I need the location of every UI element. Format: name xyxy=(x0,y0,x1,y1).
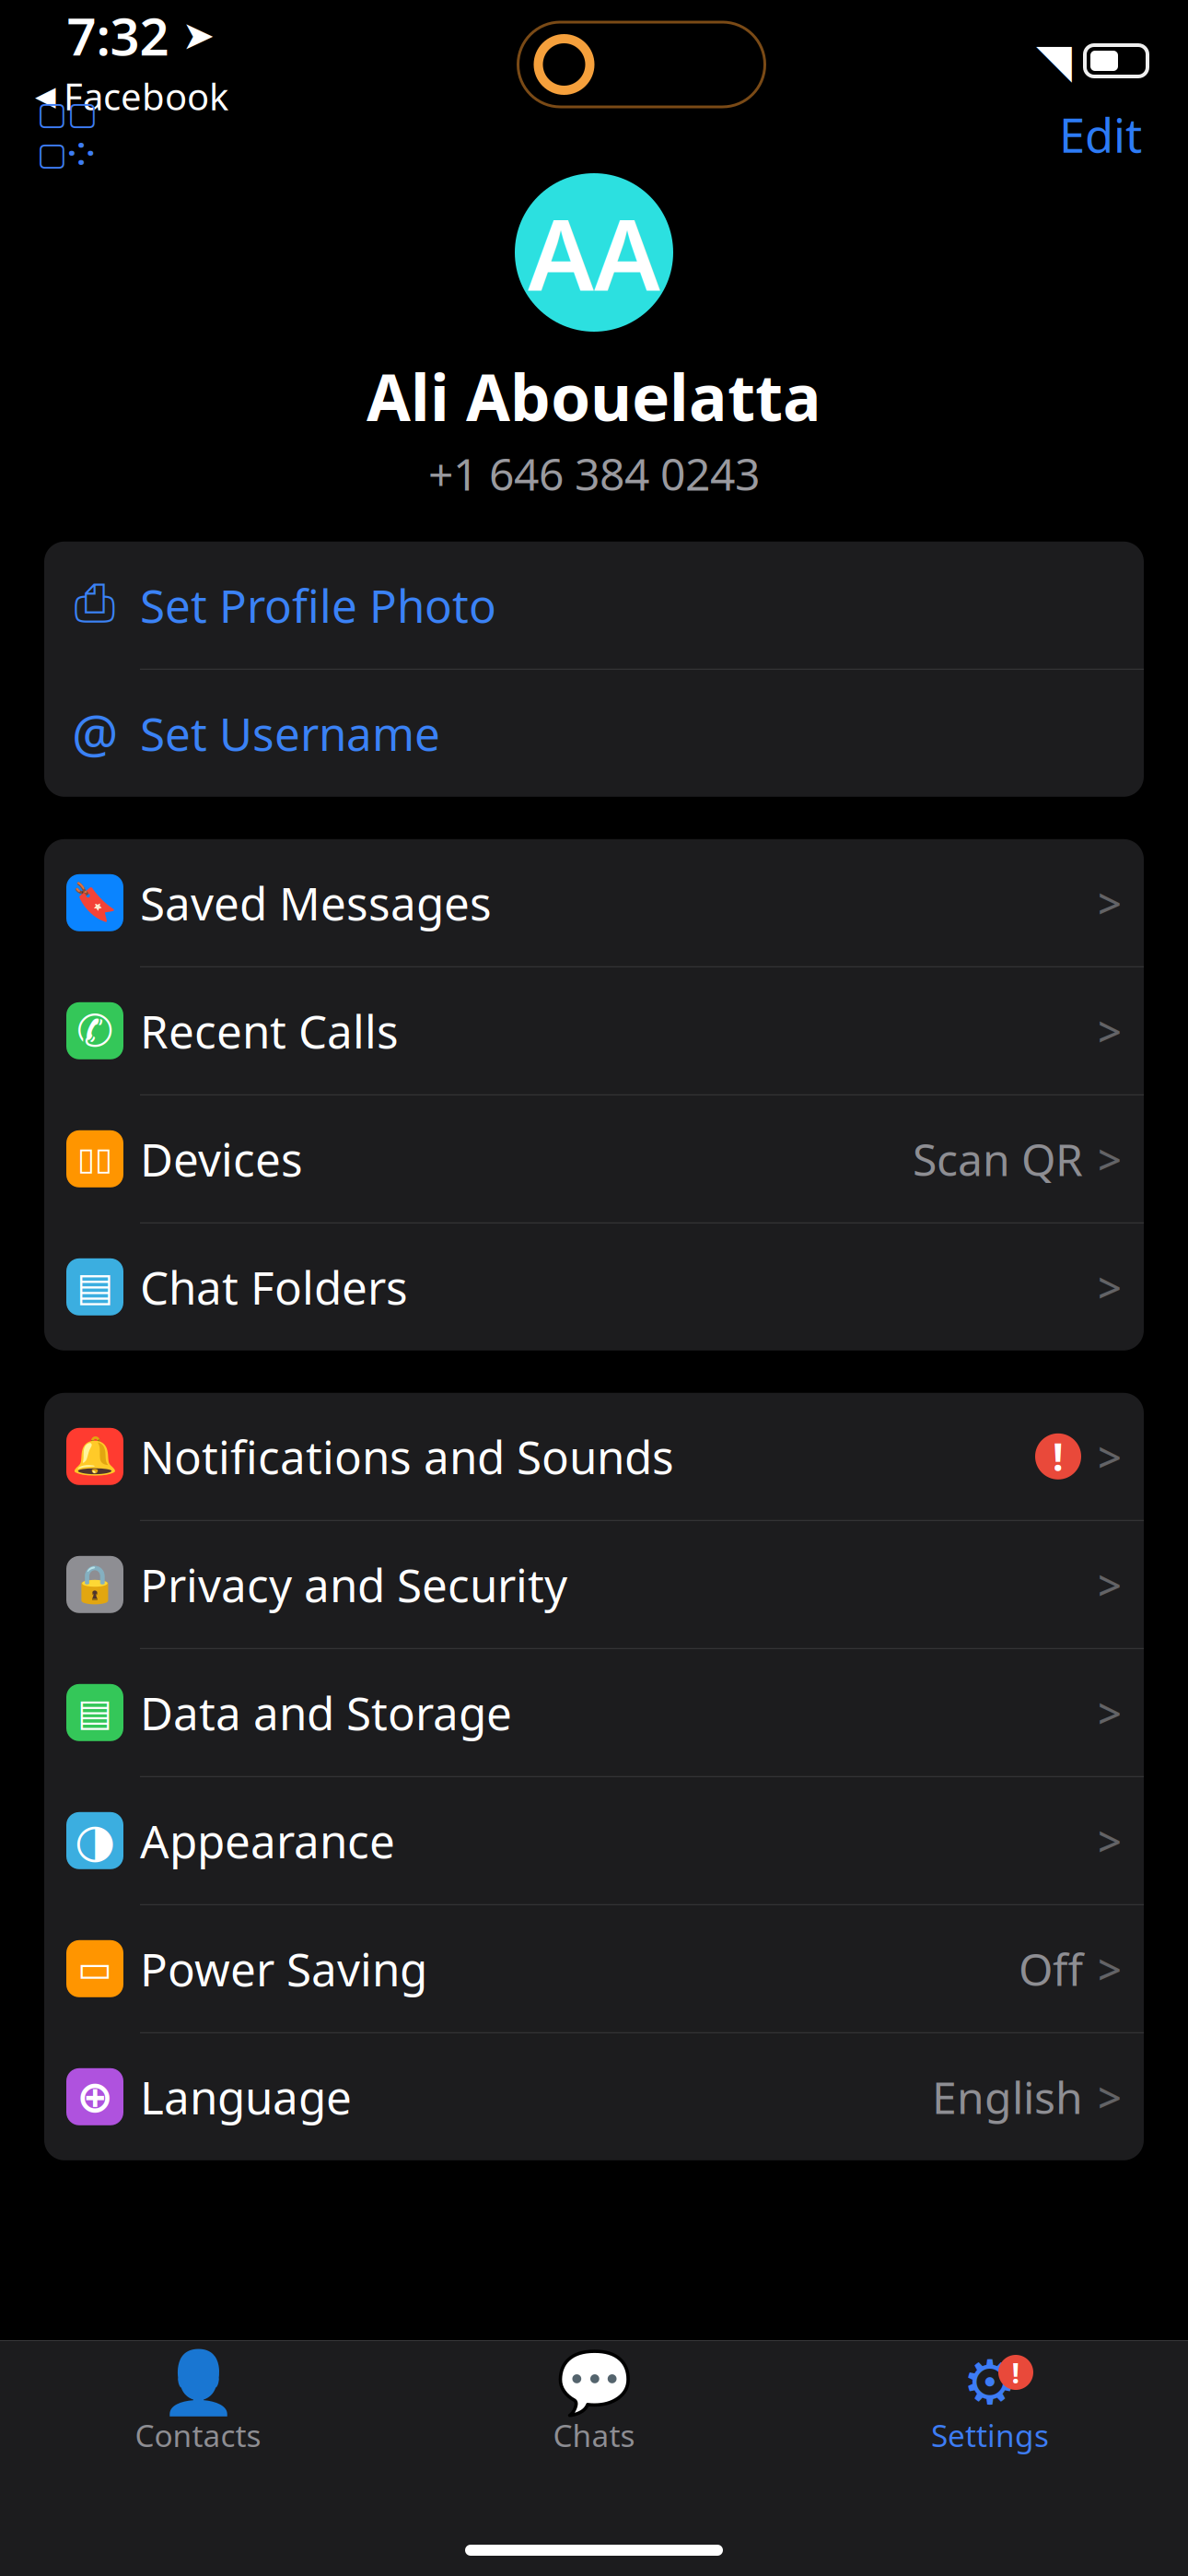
staticText: Privacy and Security xyxy=(140,1554,567,1615)
button[interactable]: ▤ xyxy=(44,1223,1144,1350)
staticText: 🔖 xyxy=(72,882,118,924)
staticText: Edit xyxy=(1059,104,1142,166)
button[interactable]: ⊕ xyxy=(44,2033,1144,2160)
staticText: Chats xyxy=(553,2415,635,2456)
staticText: > xyxy=(1098,1941,1122,1996)
staticText: 🔒 xyxy=(72,1563,118,1606)
button[interactable]: ◀ xyxy=(35,71,247,120)
staticText: Notifications and Sounds xyxy=(140,1426,674,1487)
staticText: 🔔 xyxy=(72,1435,118,1478)
staticText: ▭ xyxy=(77,1948,112,1990)
staticText: Language xyxy=(140,2067,352,2127)
staticText: ✆ xyxy=(76,1006,113,1056)
button[interactable]: ◑ xyxy=(44,1777,1144,1904)
button[interactable]: ▤ xyxy=(44,1649,1144,1776)
staticText: ▤ xyxy=(77,1692,112,1733)
button[interactable]: QR Code xyxy=(35,106,99,163)
button[interactable]: 👤 xyxy=(0,2356,396,2456)
button[interactable]: 💬 xyxy=(396,2356,792,2456)
staticText: ◑ xyxy=(75,1814,115,1867)
staticText: ▯▯ xyxy=(77,1141,112,1177)
staticText: Settings xyxy=(931,2415,1049,2456)
staticText: Ali Abouelatta xyxy=(367,354,821,439)
staticText: Devices xyxy=(140,1129,303,1189)
button[interactable]: ⚙ xyxy=(792,2356,1188,2456)
button[interactable]: 🔖 xyxy=(44,839,1144,966)
staticText: Appearance xyxy=(140,1810,395,1871)
staticText: > xyxy=(1098,1557,1122,1612)
staticText: ! xyxy=(1012,2354,1020,2391)
staticText: +1 646 384 0243 xyxy=(428,444,760,503)
staticText: ➤ xyxy=(182,13,215,58)
staticText: English xyxy=(932,2067,1083,2126)
staticText: 💬 xyxy=(556,2347,632,2418)
staticText: > xyxy=(1098,1003,1122,1059)
button[interactable]: Edit xyxy=(1048,96,1153,173)
staticText: Saved Messages xyxy=(140,873,492,933)
staticText: Recent Calls xyxy=(140,1001,399,1061)
staticText: Facebook xyxy=(64,71,228,120)
button[interactable]: ▯▯ xyxy=(44,1095,1144,1222)
staticText: Off xyxy=(1019,1939,1083,1998)
staticText: ◀ xyxy=(35,81,56,111)
staticText: ⎙ xyxy=(74,580,116,630)
button[interactable]: @ xyxy=(44,670,1144,797)
staticText: > xyxy=(1098,1131,1122,1187)
staticText: @ xyxy=(72,699,118,767)
staticText: 7:32 xyxy=(67,1,169,70)
staticText: ! xyxy=(1053,1431,1064,1482)
button[interactable]: 🔒 xyxy=(44,1521,1144,1648)
staticText: Scan QR xyxy=(913,1129,1083,1188)
staticText: Chat Folders xyxy=(140,1257,408,1317)
button[interactable]: ⎙ xyxy=(44,542,1144,669)
staticText: > xyxy=(1098,1813,1122,1868)
staticText: ▤ xyxy=(76,1265,113,1309)
staticText: Set Username xyxy=(140,703,440,763)
staticText: Power Saving xyxy=(140,1939,427,1999)
staticText: Set Profile Photo xyxy=(140,575,496,635)
button[interactable]: ▭ xyxy=(44,1905,1144,2032)
staticText: ▢▢ ▢⁘ xyxy=(37,95,98,174)
staticText: > xyxy=(1098,875,1122,930)
staticText: ⊕ xyxy=(76,2072,113,2122)
staticText: > xyxy=(1098,2069,1122,2124)
button[interactable]: ✆ xyxy=(44,967,1144,1094)
staticText: > xyxy=(1098,1429,1122,1484)
staticText: > xyxy=(1098,1259,1122,1315)
staticText: AA xyxy=(528,187,660,318)
staticText: Data and Storage xyxy=(140,1682,512,1743)
staticText: 👤 xyxy=(160,2347,236,2418)
staticText: > xyxy=(1098,1685,1122,1740)
staticText: ◥ xyxy=(1036,34,1072,87)
staticText: ⚙ xyxy=(962,2348,1018,2417)
staticText: Contacts xyxy=(135,2415,261,2456)
button[interactable]: 🔔 xyxy=(44,1393,1144,1520)
